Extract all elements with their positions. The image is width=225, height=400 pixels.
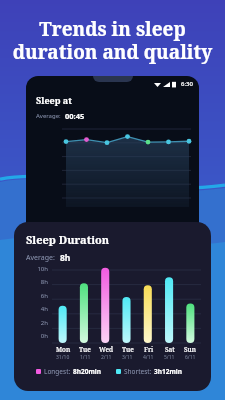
staticText: 00:45: [65, 111, 85, 121]
staticText: Average:: [26, 253, 55, 263]
staticText: 1/11: [80, 354, 91, 361]
staticText: 6h: [26, 292, 48, 300]
staticText: Fri: [144, 345, 154, 354]
staticText: 5/11: [164, 354, 175, 361]
staticText: Tue: [79, 345, 91, 354]
staticText: 2/11: [101, 354, 112, 361]
button[interactable]: Longest:: [36, 367, 116, 376]
staticText: 8h: [26, 278, 48, 286]
staticText: Trends in sleep duration and quality: [8, 16, 217, 65]
button[interactable]: Sleep Duration: [14, 222, 211, 391]
staticText: 31/10: [56, 354, 70, 361]
staticText: Wed: [99, 345, 114, 354]
staticText: Tue: [122, 345, 134, 354]
button[interactable]: Shortest:: [116, 367, 197, 376]
staticText: Sun: [184, 345, 197, 354]
staticText: Shortest:: [124, 367, 152, 376]
staticText: 10h: [26, 265, 48, 273]
staticText: 0h: [26, 332, 48, 340]
staticText: 3/11: [122, 354, 133, 361]
staticText: Average:: [36, 112, 61, 120]
staticText: 6/11: [185, 354, 196, 361]
staticText: Sat: [165, 345, 175, 354]
staticText: 6:30: [181, 80, 193, 88]
staticText: 3h12min: [154, 367, 182, 376]
staticText: 8h20min: [73, 367, 101, 376]
staticText: 4h: [26, 305, 48, 313]
staticText: Sleep at: [36, 94, 72, 106]
staticText: 2h: [26, 319, 48, 327]
staticText: Mon: [56, 345, 71, 354]
staticText: Longest:: [44, 367, 71, 376]
staticText: Sleep Duration: [26, 232, 110, 247]
staticText: 8h: [60, 252, 71, 264]
staticText: 4/11: [143, 354, 154, 361]
